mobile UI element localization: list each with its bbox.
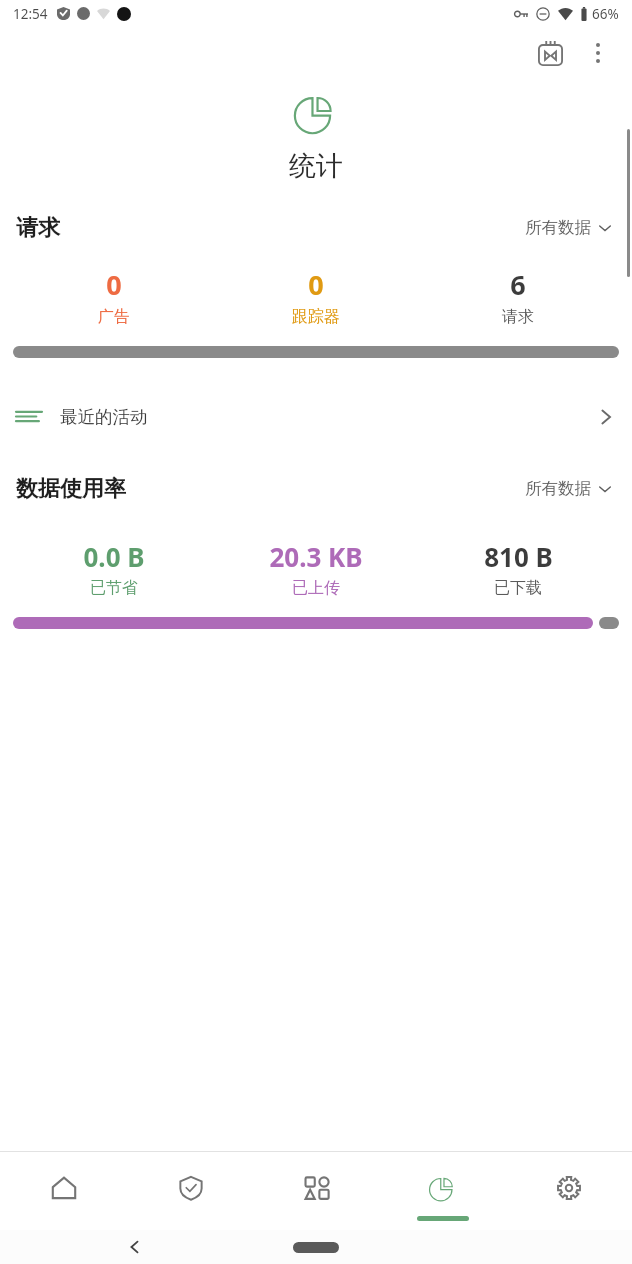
staticText: 跟踪器: [292, 307, 340, 327]
staticText: 0.0 B: [83, 539, 145, 574]
staticText: 0: [106, 266, 122, 303]
button[interactable]: 20.3 KB: [215, 539, 417, 598]
staticText: 数据使用率: [16, 475, 126, 503]
staticText: 统计: [0, 149, 632, 183]
staticText: 12:54: [13, 5, 48, 23]
staticText: 已节省: [90, 578, 138, 598]
button[interactable]: Select date range: [526, 29, 574, 77]
staticText: 已下载: [494, 578, 542, 598]
button[interactable]: Apps: [254, 1152, 380, 1230]
staticText: 已上传: [292, 578, 340, 598]
button[interactable]: 所有数据: [521, 213, 616, 242]
staticText: 20.3 KB: [269, 539, 363, 574]
other: Back: [126, 1238, 144, 1256]
staticText: 请求: [502, 307, 534, 327]
staticText: 所有数据: [525, 217, 591, 238]
button[interactable]: Statistics: [380, 1152, 506, 1230]
button[interactable]: 最近的活动: [0, 388, 632, 446]
button[interactable]: 6: [417, 266, 619, 327]
staticText: 0: [308, 266, 324, 303]
button[interactable]: Protection: [127, 1152, 254, 1230]
button[interactable]: Home: [0, 1152, 127, 1230]
button[interactable]: 0: [13, 266, 215, 327]
button[interactable]: 所有数据: [521, 474, 616, 503]
button[interactable]: More options: [574, 29, 622, 77]
staticText: 最近的活动: [60, 406, 148, 428]
staticText: 810 B: [484, 539, 553, 574]
button[interactable]: 0.0 B: [13, 539, 215, 598]
staticText: 请求: [16, 214, 60, 242]
staticText: 6: [510, 266, 526, 303]
button[interactable]: 810 B: [417, 539, 619, 598]
button[interactable]: 0: [215, 266, 417, 327]
staticText: 所有数据: [525, 478, 591, 499]
staticText: 66%: [592, 5, 619, 23]
button[interactable]: Settings: [506, 1152, 632, 1230]
staticText: 广告: [98, 307, 130, 327]
